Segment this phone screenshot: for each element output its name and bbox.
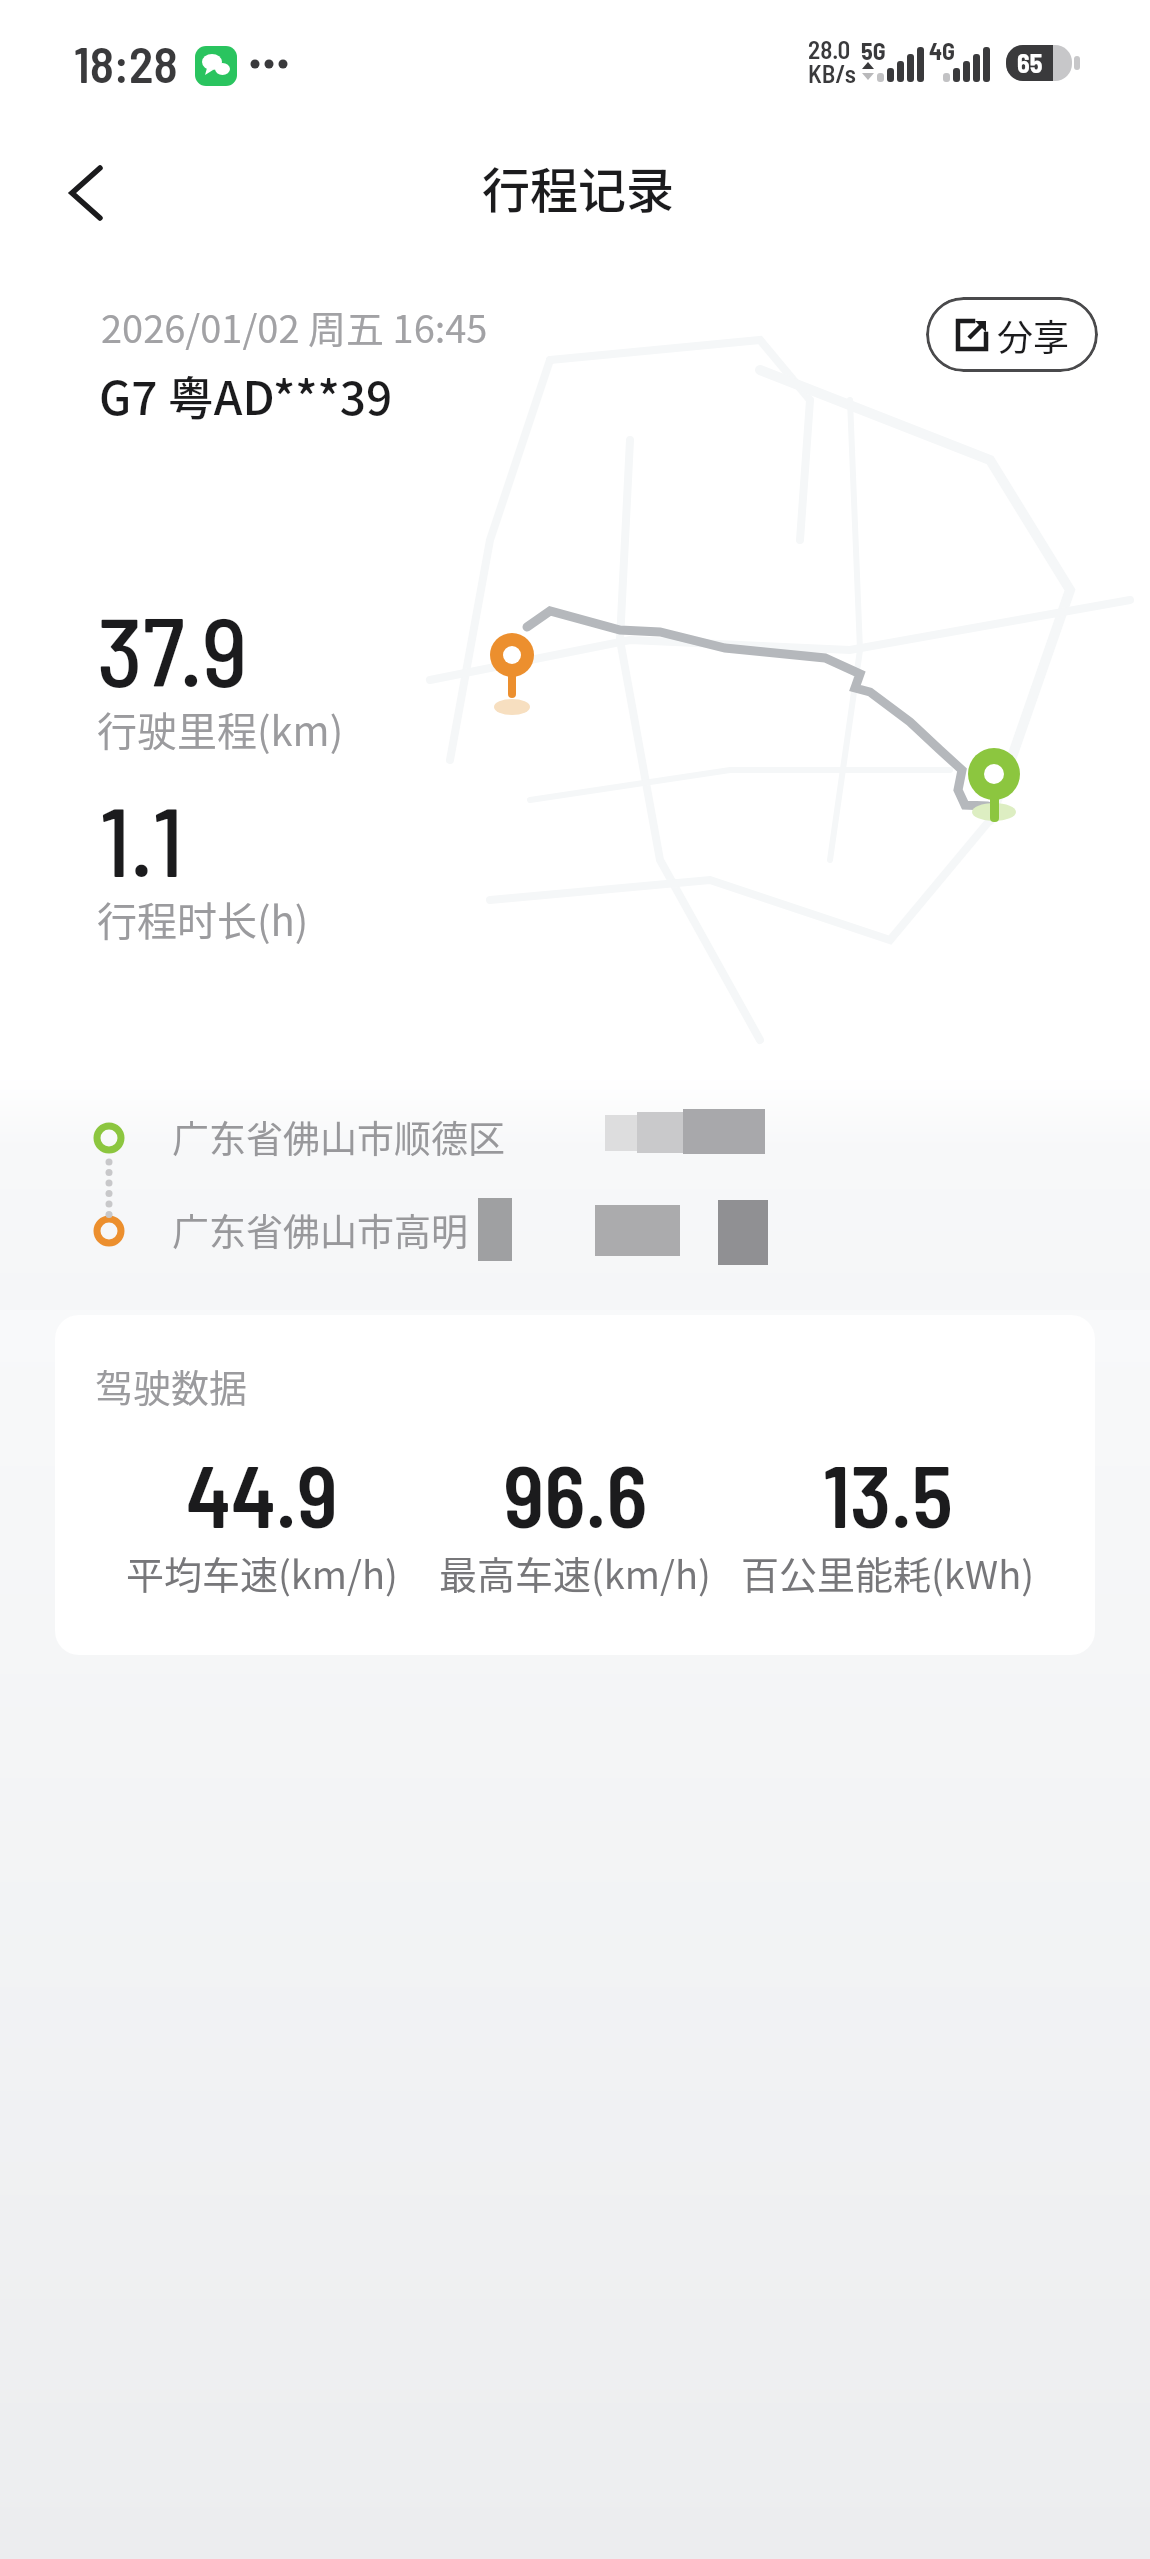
staticText: 行驶里程(km)	[97, 700, 344, 758]
staticText: 37.9	[97, 590, 248, 706]
button[interactable]	[50, 155, 130, 235]
staticText: 28.0	[808, 34, 851, 64]
staticText: 1.1	[100, 780, 184, 896]
staticText: 18:28	[74, 33, 178, 93]
staticText: 4G	[929, 36, 956, 65]
staticText: 2026/01/02 周五 16:45	[101, 299, 488, 354]
staticText: 最高车速(km/h)	[439, 1545, 711, 1600]
staticText: 44.9	[186, 1442, 338, 1545]
staticText: 5G	[861, 36, 886, 65]
staticText: 行程记录	[482, 152, 675, 222]
staticText: 平均车速(km/h)	[126, 1545, 398, 1600]
button[interactable]	[55, 1315, 1095, 1655]
staticText: 65	[1017, 47, 1043, 78]
button[interactable]: 分享	[926, 297, 1098, 372]
staticText: KB/s	[808, 58, 856, 88]
staticText: 行程时长(h)	[97, 890, 309, 948]
staticText: 分享	[997, 309, 1070, 361]
staticText: 13.5	[823, 1442, 953, 1545]
staticText: 广东省佛山市高明	[172, 1203, 468, 1257]
staticText: 驾驶数据	[95, 1358, 248, 1413]
staticText: 百公里能耗(kWh)	[741, 1545, 1035, 1600]
staticText: 广东省佛山市顺德区	[172, 1110, 505, 1164]
staticText: G7 粤AD***39	[99, 362, 393, 429]
staticText: 96.6	[503, 1442, 648, 1545]
